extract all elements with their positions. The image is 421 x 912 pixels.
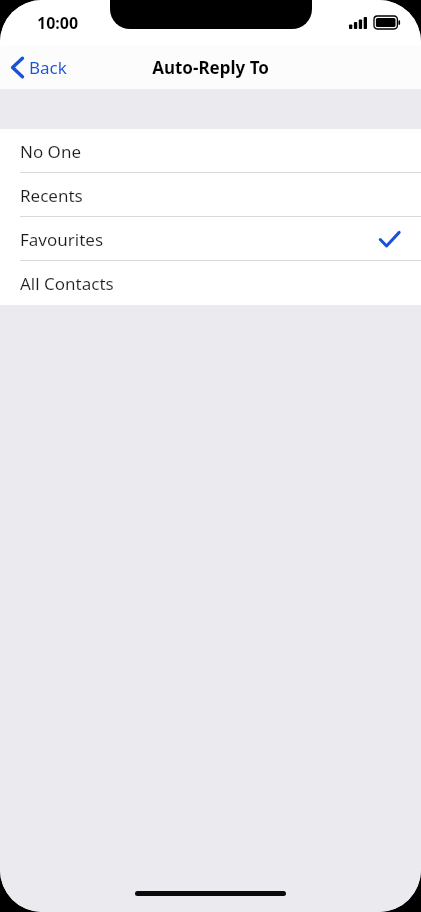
button[interactable]: Favourites — [0, 217, 421, 261]
staticText: No One — [20, 140, 81, 163]
other: Selected — [379, 231, 400, 248]
staticText: Back — [29, 56, 67, 79]
staticText: All Contacts — [20, 272, 114, 295]
button[interactable]: No One — [0, 129, 421, 173]
button[interactable]: All Contacts — [0, 261, 421, 305]
button[interactable]: Recents — [0, 173, 421, 217]
staticText: Recents — [20, 184, 83, 207]
staticText: 10:00 — [37, 12, 79, 34]
staticText: Favourites — [20, 228, 104, 251]
staticText: Auto-Reply To — [152, 56, 269, 79]
button[interactable]: Back — [0, 45, 77, 89]
